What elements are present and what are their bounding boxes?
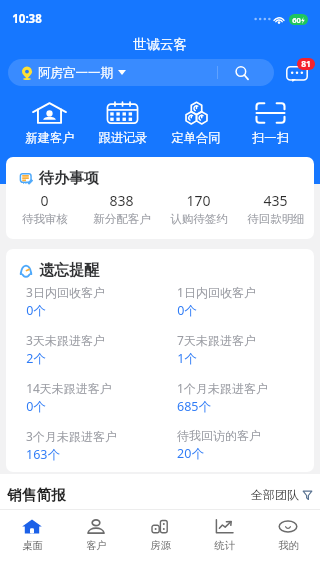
button[interactable]: 待我回访的客户 [160, 428, 314, 462]
staticText: 全部团队 [251, 487, 299, 502]
button[interactable]: 定单合同 [159, 102, 233, 145]
staticText: 定单合同 [171, 130, 221, 145]
button[interactable]: 170 [160, 191, 237, 226]
button[interactable]: 新建客户 [13, 102, 86, 145]
staticText: 0个 [26, 398, 46, 415]
button[interactable]: 7天未跟进客户 [160, 332, 314, 380]
button[interactable]: 3个月未跟进客户 [6, 428, 160, 462]
button[interactable]: 435 [237, 191, 314, 226]
button[interactable]: 客户 [64, 510, 128, 568]
staticText: 1日内回收客户 [177, 284, 256, 300]
staticText: 685个 [177, 398, 211, 415]
staticText: 10:38 [12, 11, 42, 27]
staticText: 2个 [26, 350, 46, 367]
staticText: 待办事项 [39, 169, 99, 188]
button[interactable]: 桌面 [0, 510, 64, 568]
button[interactable]: Messages [280, 55, 314, 89]
button[interactable]: 阿房宫一一期 [8, 59, 274, 86]
staticText: 待我回访的客户 [177, 428, 261, 443]
staticText: 扫一扫 [252, 130, 289, 145]
staticText: 我的 [278, 539, 299, 552]
button[interactable]: 838 [83, 191, 160, 226]
staticText: 3天未跟进客户 [26, 332, 105, 348]
button[interactable]: 跟进记录 [86, 102, 159, 145]
staticText: 待我审核 [22, 212, 68, 226]
staticText: 0个 [26, 302, 46, 319]
staticText: 0个 [177, 302, 197, 319]
staticText: 435 [263, 191, 288, 210]
button[interactable]: 3日内回收客户 [6, 284, 160, 332]
button[interactable]: 统计 [192, 510, 256, 568]
staticText: 1个 [177, 350, 197, 367]
staticText: 新建客户 [25, 130, 75, 145]
staticText: 163个 [26, 446, 60, 462]
staticText: 房源 [150, 539, 171, 552]
staticText: 14天未跟进客户 [26, 380, 112, 396]
staticText: 桌面 [22, 539, 43, 552]
button[interactable]: 扫一扫 [233, 102, 307, 145]
staticText: 阿房宫一一期 [38, 65, 113, 81]
button[interactable]: 1日内回收客户 [160, 284, 314, 332]
staticText: 跟进记录 [98, 130, 148, 145]
staticText: 838 [109, 191, 134, 210]
staticText: 170 [186, 191, 211, 210]
staticText: 认购待签约 [170, 212, 228, 226]
staticText: 20个 [177, 445, 204, 462]
staticText: 遗忘提醒 [39, 261, 99, 280]
staticText: 世诚云客 [133, 36, 187, 53]
button[interactable]: 3天未跟进客户 [6, 332, 160, 380]
staticText: 销售简报 [7, 486, 66, 504]
staticText: 3日内回收客户 [26, 284, 105, 300]
button[interactable]: 0 [6, 191, 83, 226]
staticText: 60 [292, 15, 301, 25]
button[interactable]: 1个月未跟进客户 [160, 380, 314, 428]
staticText: 81 [301, 58, 311, 70]
staticText: 新分配客户 [93, 212, 151, 226]
staticText: 0 [40, 191, 49, 210]
button[interactable]: 14天未跟进客户 [6, 380, 160, 428]
staticText: 3个月未跟进客户 [26, 428, 117, 444]
staticText: 7天未跟进客户 [177, 332, 256, 348]
button[interactable]: 我的 [256, 510, 320, 568]
button[interactable]: 全部团队 [251, 487, 312, 502]
staticText: 客户 [86, 539, 107, 552]
staticText: 待回款明细 [247, 212, 305, 226]
staticText: 1个月未跟进客户 [177, 380, 268, 396]
staticText: 统计 [214, 539, 235, 552]
button[interactable]: 房源 [128, 510, 192, 568]
